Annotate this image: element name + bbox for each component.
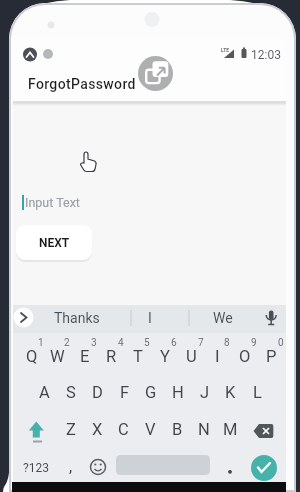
staticText: LTE bbox=[221, 47, 230, 53]
staticText: Input Text bbox=[25, 195, 80, 210]
button[interactable]: R bbox=[98, 338, 125, 374]
button[interactable] bbox=[222, 455, 238, 479]
button[interactable]: U bbox=[178, 338, 205, 374]
button[interactable]: Thanks bbox=[47, 304, 107, 332]
button[interactable]: J bbox=[191, 374, 218, 410]
staticText: M bbox=[223, 420, 238, 439]
staticText: U bbox=[186, 347, 197, 366]
staticText: H bbox=[172, 383, 184, 402]
staticText: 4 bbox=[118, 337, 124, 348]
button[interactable]: N bbox=[190, 411, 217, 447]
button[interactable] bbox=[138, 56, 173, 91]
staticText: B bbox=[172, 420, 183, 439]
staticText: Thanks bbox=[54, 310, 100, 326]
staticText: 6 bbox=[171, 337, 177, 348]
button[interactable]: Input Text bbox=[25, 194, 80, 210]
staticText: 2 bbox=[64, 337, 70, 348]
staticText: X bbox=[92, 420, 103, 439]
button[interactable]: S bbox=[57, 374, 84, 410]
button[interactable] bbox=[13, 305, 37, 331]
staticText: , bbox=[69, 457, 73, 476]
staticText: Q bbox=[26, 347, 38, 366]
button[interactable]: ?123 bbox=[22, 454, 50, 482]
staticText: W bbox=[50, 347, 65, 366]
staticText: K bbox=[225, 383, 236, 402]
staticText: R bbox=[106, 347, 117, 366]
button[interactable]: F bbox=[111, 374, 138, 410]
button[interactable] bbox=[22, 414, 50, 446]
staticText: I bbox=[215, 347, 220, 366]
button[interactable]: I bbox=[135, 304, 165, 332]
staticText: D bbox=[92, 383, 103, 402]
button[interactable]: M bbox=[217, 411, 244, 447]
staticText: F bbox=[120, 383, 130, 402]
button[interactable]: W bbox=[44, 338, 71, 374]
staticText: E bbox=[80, 347, 90, 366]
staticText: S bbox=[66, 383, 76, 402]
button[interactable]: L bbox=[244, 374, 271, 410]
staticText: ForgotPassword bbox=[28, 76, 136, 92]
button[interactable]: I bbox=[204, 338, 231, 374]
staticText: J bbox=[200, 383, 210, 402]
staticText: 0 bbox=[278, 337, 284, 348]
staticText: A bbox=[39, 383, 50, 402]
button[interactable]: H bbox=[164, 374, 191, 410]
button[interactable]: NEXT bbox=[16, 225, 92, 260]
staticText: C bbox=[118, 420, 129, 439]
button[interactable]: D bbox=[84, 374, 111, 410]
button[interactable]: O bbox=[231, 338, 258, 374]
staticText: ?123 bbox=[23, 461, 49, 475]
staticText: V bbox=[145, 420, 156, 439]
button[interactable]: E bbox=[71, 338, 98, 374]
staticText: P bbox=[266, 347, 277, 366]
staticText: 12:03 bbox=[251, 48, 281, 60]
button[interactable]: We bbox=[203, 304, 243, 332]
button[interactable]: Y bbox=[151, 338, 178, 374]
button[interactable]: C bbox=[110, 411, 137, 447]
button[interactable] bbox=[250, 416, 278, 446]
staticText: 8 bbox=[224, 337, 230, 348]
staticText: L bbox=[253, 383, 262, 402]
staticText: O bbox=[239, 347, 251, 366]
staticText: 1 bbox=[38, 337, 44, 348]
button[interactable]: Z bbox=[57, 411, 84, 447]
button[interactable]: G bbox=[137, 374, 164, 410]
staticText: Y bbox=[160, 347, 170, 366]
button[interactable]: , bbox=[60, 448, 82, 484]
button[interactable]: Q bbox=[18, 338, 45, 374]
button[interactable]: T bbox=[124, 338, 151, 374]
staticText: I bbox=[148, 310, 152, 326]
button[interactable] bbox=[258, 305, 284, 331]
button[interactable]: A bbox=[31, 374, 58, 410]
button[interactable] bbox=[251, 455, 277, 481]
button[interactable]: K bbox=[217, 374, 244, 410]
button[interactable]: B bbox=[164, 411, 191, 447]
staticText: N bbox=[198, 420, 210, 439]
button[interactable]: P bbox=[258, 338, 285, 374]
staticText: 3 bbox=[91, 337, 97, 348]
staticText: Z bbox=[66, 420, 76, 439]
button[interactable]: X bbox=[84, 411, 111, 447]
button[interactable]: V bbox=[137, 411, 164, 447]
staticText: 9 bbox=[251, 337, 257, 348]
staticText: 7 bbox=[198, 337, 204, 348]
staticText: G bbox=[145, 383, 157, 402]
staticText: NEXT bbox=[39, 236, 70, 250]
button[interactable] bbox=[86, 455, 110, 479]
staticText: 5 bbox=[144, 337, 150, 348]
staticText: We bbox=[213, 310, 233, 326]
staticText: T bbox=[133, 347, 143, 366]
